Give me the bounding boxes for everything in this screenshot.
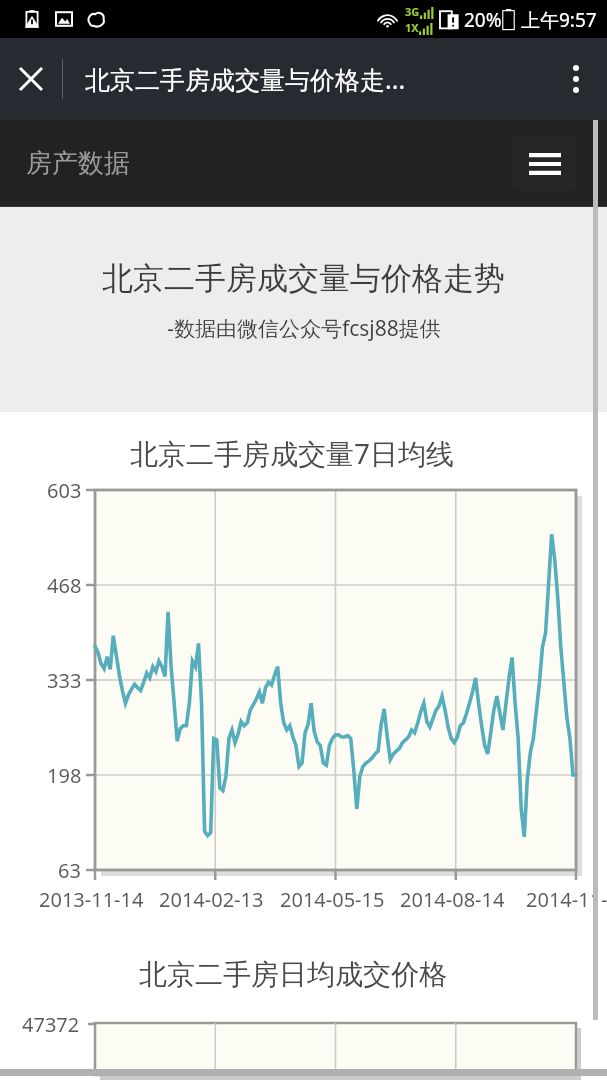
staticText: 2014-08-14 — [400, 886, 505, 913]
staticText: 468 — [47, 572, 82, 599]
staticText: 2014-11-1 — [526, 886, 607, 913]
staticText: 63 — [58, 857, 81, 884]
staticText: -数据由微信公众号fcsj88提供 — [167, 314, 441, 343]
staticText: 20% — [464, 7, 502, 33]
staticText: 333 — [47, 667, 82, 694]
button[interactable]: More options — [545, 48, 607, 110]
staticText: 1X — [405, 20, 419, 35]
staticText: 北京二手房成交量与价格走势 — [102, 259, 505, 298]
staticText: 2014-02-13 — [159, 886, 264, 913]
staticText: 上午9:57 — [521, 7, 597, 33]
staticText: 北京二手房成交量7日均线 — [130, 434, 455, 472]
staticText: 北京二手房成交量与价格走... — [85, 62, 545, 96]
staticText: 2013-11-14 — [39, 886, 144, 913]
button[interactable]: 房产数据 — [26, 147, 130, 180]
staticText: 47372 — [22, 1011, 80, 1038]
staticText: 603 — [47, 477, 82, 504]
staticText: 3G — [405, 4, 420, 19]
staticText: 北京二手房日均成交价格 — [139, 957, 447, 992]
staticText: 198 — [47, 762, 82, 789]
button[interactable]: Toggle navigation — [512, 136, 577, 191]
staticText: 2014-05-15 — [280, 886, 385, 913]
button[interactable]: Close — [0, 48, 62, 110]
